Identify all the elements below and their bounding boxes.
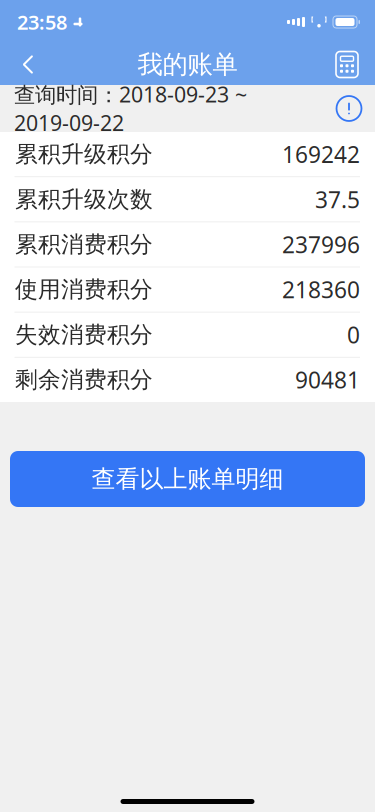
staticText: 23:58 [17, 9, 67, 35]
button[interactable]: 说明 [329, 86, 369, 130]
staticText: 累积消费积分 [15, 230, 153, 258]
staticText: 37.5 [315, 184, 360, 214]
button[interactable]: 计算器 [323, 42, 371, 86]
staticText: 使用消费积分 [15, 276, 153, 303]
staticText: 失效消费积分 [15, 321, 153, 348]
button[interactable]: 返回 [4, 42, 52, 86]
staticText: 累积升级积分 [15, 140, 153, 168]
button[interactable]: 查看以上账单明细 [10, 451, 365, 507]
staticText: 90481 [295, 365, 360, 395]
button[interactable]: 累积升级积分 [0, 132, 375, 177]
staticText: 237996 [282, 229, 360, 259]
button[interactable]: 累积消费积分 [0, 222, 375, 267]
staticText: 218360 [282, 274, 360, 305]
button[interactable]: 累积升级次数 [0, 177, 375, 222]
button[interactable]: 剩余消费积分 [0, 357, 375, 402]
staticText: 查看以上账单明细 [91, 464, 283, 494]
staticText: 我的账单 [137, 49, 237, 80]
staticText: 0 [347, 320, 360, 350]
staticText: 累积升级次数 [15, 185, 153, 213]
button[interactable]: 失效消费积分 [0, 312, 375, 357]
staticText: 169242 [282, 139, 360, 169]
button[interactable]: 使用消费积分 [0, 267, 375, 312]
staticText: 查询时间：2018-09-23 ~ 2019-09-22 [14, 80, 247, 137]
staticText: 剩余消费积分 [15, 366, 153, 394]
